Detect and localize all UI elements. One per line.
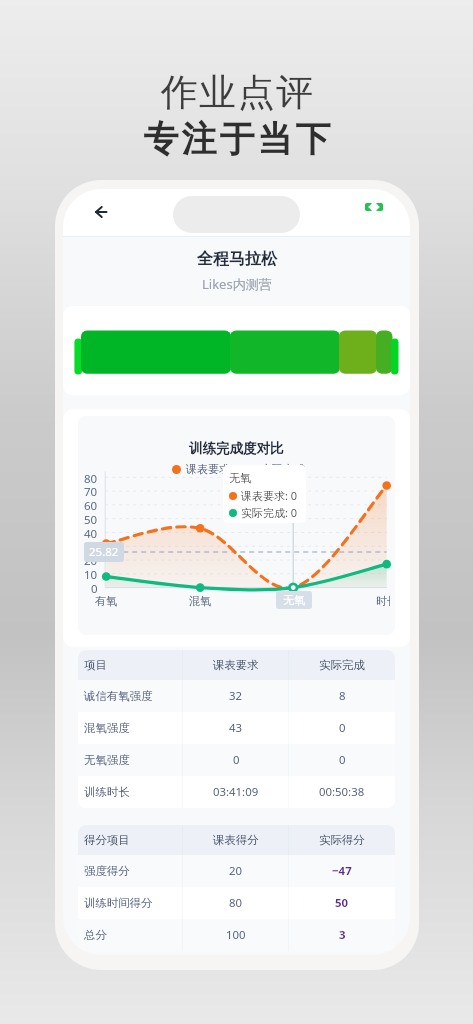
staticText: 混氧 [189, 594, 211, 608]
staticText: 强度得分 [84, 864, 130, 878]
staticText: 8 [339, 688, 346, 704]
button[interactable]: 诚信有氧强度 [78, 680, 395, 712]
staticText: 80 [84, 471, 98, 485]
staticText: 无氧强度 [84, 753, 130, 767]
staticText: 80 [229, 895, 243, 911]
staticText: 25.82 [89, 544, 119, 560]
button[interactable]: 训练时间得分 [78, 887, 395, 919]
staticText: 00:50:38 [319, 784, 365, 800]
button[interactable]: 训练时长 [78, 776, 395, 808]
staticText: 32 [229, 688, 243, 704]
button[interactable]: 强度得分 [78, 855, 395, 887]
staticText: 10 [84, 567, 98, 581]
staticText: 50 [84, 512, 98, 526]
staticText: 课表要求 [213, 658, 259, 672]
staticText: 0 [339, 752, 346, 768]
staticText: 作业点评 [160, 69, 314, 116]
staticText: 20 [84, 553, 98, 567]
button[interactable]: 总分 [78, 919, 395, 951]
staticText: 得分项目 [84, 833, 130, 847]
staticText: 混氧强度 [84, 721, 130, 735]
staticText: Likes内测营 [202, 275, 272, 293]
staticText: 实际完成 [261, 462, 305, 476]
staticText: 0 [339, 720, 346, 736]
staticText: 03:41:09 [213, 784, 259, 800]
staticText: 3 [339, 927, 346, 943]
staticText: 训练时间得分 [84, 896, 153, 910]
staticText: 0 [233, 752, 240, 768]
staticText: 专注于当下 [142, 117, 332, 161]
staticText: 实际完成: 0 [241, 505, 298, 520]
staticText: 无氧 [229, 471, 251, 485]
staticText: 30 [84, 539, 98, 553]
staticText: 课表要求: 0 [241, 488, 298, 503]
staticText: 0 [91, 581, 98, 595]
staticText: 50 [335, 895, 349, 911]
staticText: 总分 [84, 928, 107, 942]
staticText: 70 [84, 484, 98, 498]
staticText: 课表得分 [213, 833, 259, 847]
staticText: 训练时长 [84, 785, 130, 799]
button[interactable]: 混氧强度 [78, 712, 395, 744]
staticText: 60 [84, 498, 98, 512]
staticText: 43 [229, 720, 243, 736]
staticText: 诚信有氧强度 [84, 689, 153, 703]
staticText: 全程马拉松 [197, 249, 277, 269]
button[interactable]: 无氧强度 [78, 744, 395, 776]
staticText: 课表要求 [186, 462, 230, 476]
staticText: 20 [229, 863, 243, 879]
staticText: 时长 [376, 594, 390, 608]
button[interactable]: 项目 [78, 650, 395, 680]
button[interactable]: App logo [360, 193, 388, 221]
staticText: 无氧 [283, 593, 305, 607]
staticText: 实际得分 [319, 833, 365, 847]
staticText: 100 [226, 927, 246, 943]
staticText: 项目 [84, 658, 107, 672]
staticText: 训练完成度对比 [189, 440, 284, 457]
button[interactable]: Back [87, 198, 115, 226]
staticText: 40 [84, 526, 98, 540]
staticText: 实际完成 [319, 658, 365, 672]
button[interactable]: 得分项目 [78, 825, 395, 855]
staticText: 有氧 [95, 594, 117, 608]
staticText: −47 [332, 863, 352, 879]
